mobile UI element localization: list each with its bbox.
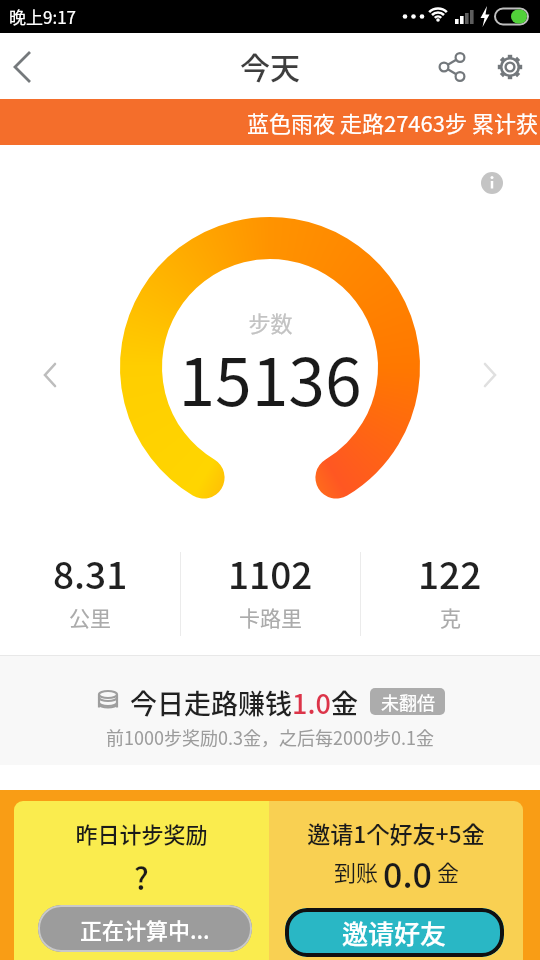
staticText: 今天 [240, 44, 300, 87]
staticText: 邀请好友 [342, 914, 447, 952]
staticText: 0.0 [383, 849, 432, 893]
button[interactable] [478, 169, 506, 197]
button[interactable]: 邀请好友 [285, 908, 504, 957]
staticText: 正在计算中... [80, 913, 210, 945]
staticText: 晚上9:17 [9, 4, 77, 29]
button[interactable]: 正在计算中... [38, 905, 252, 952]
staticText: 步数 [248, 306, 293, 338]
button[interactable]: 蓝色雨夜 走路27463步 累计获 [0, 99, 540, 145]
staticText: 8.31 [53, 546, 128, 598]
staticText: 邀请1个好友+5金 [307, 816, 485, 849]
staticText: 克 [440, 602, 461, 632]
staticText: 未翻倍 [381, 689, 435, 715]
staticText: 15136 [178, 329, 362, 419]
button[interactable] [436, 51, 468, 83]
staticText: 金 [331, 683, 358, 719]
button[interactable] [474, 359, 506, 391]
staticText: 金 [432, 855, 459, 887]
staticText: 公里 [69, 602, 111, 632]
staticText: 122 [418, 546, 482, 598]
staticText: 到账 [334, 855, 383, 887]
staticText: 1102 [228, 546, 313, 598]
staticText: 蓝色雨夜 走路27463步 累计获 [247, 106, 538, 138]
button[interactable] [6, 49, 38, 81]
staticText: 卡路里 [239, 602, 302, 632]
staticText: 前1000步奖励0.3金，之后每2000步0.1金 [106, 724, 434, 750]
staticText: 昨日计步奖励 [75, 817, 208, 849]
button[interactable] [494, 51, 526, 83]
button[interactable] [34, 359, 66, 391]
button[interactable]: 未翻倍 [370, 688, 445, 715]
staticText: 1.0 [292, 683, 331, 719]
staticText: ? [134, 855, 149, 895]
staticText: 今日走路赚钱 [130, 683, 292, 719]
